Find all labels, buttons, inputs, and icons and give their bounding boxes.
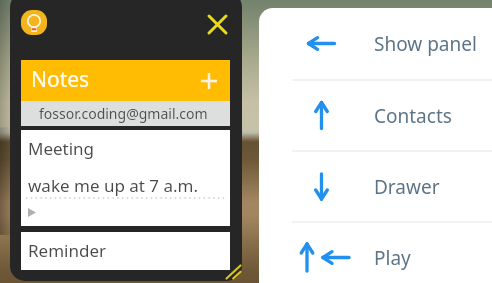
- staticText: fossor.coding@gmail.com: [39, 104, 208, 123]
- staticText: wake me up at 7 a.m.: [28, 174, 199, 197]
- button[interactable]: Keep notes: [21, 10, 47, 35]
- staticText: Contacts: [374, 103, 452, 129]
- button[interactable]: Notes: [21, 60, 230, 101]
- button[interactable]: Close: [201, 8, 234, 41]
- staticText: Play: [374, 245, 411, 271]
- staticText: Reminder: [28, 239, 107, 262]
- staticText: Meeting: [28, 137, 95, 160]
- staticText: Drawer: [374, 174, 440, 200]
- button[interactable]: Play: [259, 223, 492, 283]
- button[interactable]: Drawer: [259, 152, 492, 221]
- staticText: Show panel: [374, 31, 477, 57]
- button[interactable]: Show panel: [259, 8, 492, 79]
- button[interactable]: Add note: [196, 68, 222, 94]
- button[interactable]: Contacts: [259, 81, 492, 150]
- button[interactable]: Reminder: [21, 232, 230, 270]
- button[interactable]: Meeting: [21, 130, 230, 226]
- staticText: Notes: [31, 65, 90, 94]
